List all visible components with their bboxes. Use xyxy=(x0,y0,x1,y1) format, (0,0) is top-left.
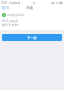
button[interactable]: 零钱通收益率 xyxy=(2,11,62,19)
button[interactable]: 持卡人姓名 xyxy=(2,19,64,23)
staticText: 中国移动 xyxy=(9,1,21,5)
staticText: 持卡人姓名 xyxy=(2,19,18,23)
button[interactable]: 取消 xyxy=(2,6,9,10)
staticText: 银行卡号码 xyxy=(2,23,18,27)
staticText: 零钱通收益率 xyxy=(7,13,25,17)
staticText: 9:41 xyxy=(1,1,8,5)
staticText: 充值 xyxy=(26,6,34,11)
button[interactable]: 银行卡号码 xyxy=(2,23,64,27)
button[interactable]: 下一步 xyxy=(2,34,62,41)
staticText: 下一步 xyxy=(27,36,37,40)
